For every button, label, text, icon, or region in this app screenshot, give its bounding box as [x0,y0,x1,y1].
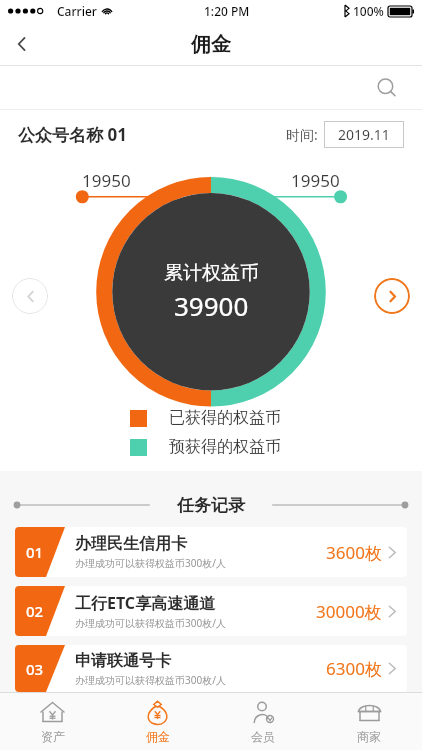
staticText: 办理成功可以获得权益币300枚/人 [75,556,226,570]
staticText: 6300枚 [326,657,382,680]
staticText: 会员 [251,729,275,744]
staticText: 02 [26,601,44,621]
button[interactable]: Search [0,66,422,109]
staticText: 100% [353,3,384,19]
staticText: 01 [26,542,44,562]
staticText: 办理成功可以获得权益币300枚/人 [75,673,226,687]
button[interactable]: Back [0,22,44,66]
staticText: 公众号名称 01 [18,123,127,146]
button[interactable]: 资产 [0,693,105,750]
staticText: 工行ETC享高速通道 [75,592,216,614]
staticText: 1:20 PM [204,3,250,19]
staticText: 办理成功可以获得权益币300枚/人 [75,616,226,630]
staticText: 2019.11 [338,125,390,144]
button[interactable]: 01 [15,527,407,577]
staticText: 39900 [174,288,249,323]
staticText: 佣金 [146,729,170,744]
staticText: 任务记录 [177,495,245,516]
button[interactable]: Previous [12,278,48,314]
staticText: 办理民生信用卡 [75,534,187,554]
staticText: 03 [26,659,44,679]
staticText: 19950 [291,169,340,192]
staticText: 19950 [82,169,131,192]
staticText: 时间: [286,125,318,144]
staticText: 资产 [41,729,65,744]
staticText: Carrier [57,3,97,19]
staticText: 佣金 [191,32,231,57]
staticText: 预获得的权益币 [169,437,281,457]
staticText: 30000枚 [316,600,382,623]
button[interactable]: 会员 [210,693,316,750]
button[interactable]: 03 [15,645,407,692]
staticText: 商家 [357,729,381,744]
button[interactable]: 2019.11 [324,121,404,148]
button[interactable]: 商家 [316,693,422,750]
staticText: 申请联通号卡 [75,651,171,671]
staticText: 3600枚 [326,541,382,564]
button[interactable]: 02 [15,586,407,636]
button[interactable]: Next [374,278,410,314]
staticText: 累计权益币 [164,261,259,285]
other: Search [372,73,402,103]
staticText: 已获得的权益币 [169,408,281,428]
button[interactable]: 佣金 [105,693,210,750]
